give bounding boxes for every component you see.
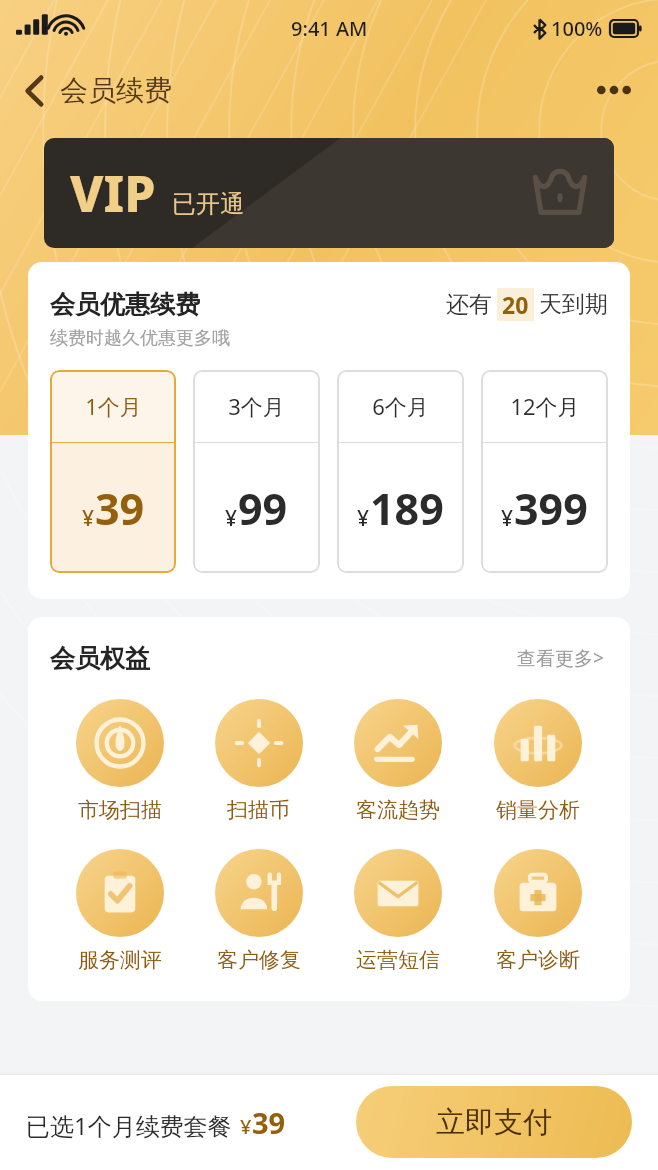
button[interactable]: 市场扫描 [50, 697, 189, 825]
staticText: 100% [551, 15, 603, 42]
other: Crown [532, 170, 588, 216]
staticText: ¥ [240, 1113, 252, 1140]
button[interactable]: More options [588, 76, 640, 104]
staticText: 189 [370, 479, 444, 538]
staticText: 市场扫描 [78, 797, 162, 823]
button[interactable]: 查看更多> [513, 641, 608, 675]
staticText: 还有 [446, 290, 492, 319]
staticText: 399 [514, 479, 588, 538]
button[interactable]: 运营短信 [328, 847, 468, 975]
staticText: 会员续费 [60, 73, 172, 108]
button[interactable]: 客户修复 [189, 847, 328, 975]
button[interactable]: 服务测评 [50, 847, 189, 975]
button[interactable]: 销量分析 [468, 697, 608, 825]
staticText: 3个月 [228, 391, 285, 421]
button[interactable]: 立即支付 [356, 1086, 632, 1158]
staticText: ¥ [501, 504, 514, 533]
staticText: ¥ [82, 504, 95, 533]
staticText: ¥ [357, 504, 370, 533]
staticText: 6个月 [372, 391, 429, 421]
button[interactable]: Back [18, 67, 178, 114]
staticText: 客户诊断 [496, 947, 580, 973]
staticText: 已开通 [172, 189, 244, 219]
staticText: 扫描币 [227, 797, 290, 823]
staticText: 1个月 [85, 391, 142, 421]
button[interactable]: 3个月 [193, 370, 320, 573]
other: Back [24, 75, 44, 107]
staticText: 客户修复 [217, 947, 301, 973]
staticText: 已选1个月续费套餐 [26, 1109, 232, 1142]
staticText: 9:41 AM [291, 15, 368, 42]
staticText: 39 [95, 479, 145, 538]
staticText: 立即支付 [436, 1104, 552, 1141]
staticText: VIP [70, 159, 156, 227]
button[interactable]: 6个月 [337, 370, 464, 573]
staticText: 运营短信 [356, 947, 440, 973]
staticText: 查看更多> [517, 645, 604, 671]
button[interactable]: 客户诊断 [468, 847, 608, 975]
staticText: 会员优惠续费 [50, 289, 200, 320]
staticText: 客流趋势 [356, 797, 440, 823]
staticText: 天到期 [539, 290, 608, 319]
button[interactable]: VIP [44, 138, 614, 248]
button[interactable]: 客流趋势 [328, 697, 468, 825]
staticText: 服务测评 [78, 947, 162, 973]
staticText: 39 [252, 1103, 286, 1142]
button[interactable]: 扫描币 [189, 697, 328, 825]
button[interactable]: 12个月 [481, 370, 608, 573]
button[interactable]: 1个月 [50, 370, 176, 573]
staticText: 续费时越久优惠更多哦 [50, 327, 230, 350]
staticText: 12个月 [510, 391, 580, 421]
staticText: 销量分析 [496, 797, 580, 823]
staticText: 99 [238, 479, 288, 538]
staticText: 20 [502, 289, 529, 320]
staticText: ¥ [225, 504, 238, 533]
staticText: 会员权益 [50, 643, 150, 674]
